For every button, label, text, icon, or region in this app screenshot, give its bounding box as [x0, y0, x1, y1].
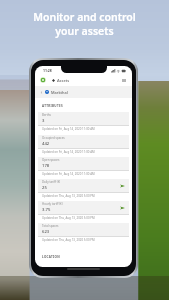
button[interactable]: Berths	[35, 112, 132, 135]
button[interactable]: Occupied spaces	[35, 135, 132, 158]
staticText: Total spaces	[42, 224, 59, 228]
staticText: Updated on Thu, Aug 13, 2020 5:00 PM	[42, 216, 95, 220]
button[interactable]: Home	[40, 77, 46, 83]
staticText: 11:28	[43, 68, 52, 73]
button[interactable]: Total spaces	[35, 223, 132, 246]
other: Back	[40, 91, 43, 94]
staticText: Monitor and control	[33, 10, 136, 24]
staticText: your assets	[55, 24, 114, 38]
staticText: Updated on Fri, Aug 14, 2020 11:00 AM	[42, 172, 95, 176]
staticText: 3.75	[42, 207, 51, 213]
staticText: Markthal	[51, 90, 68, 95]
staticText: Occupied spaces	[42, 136, 65, 140]
staticText: 25	[42, 185, 47, 191]
staticText: Daily tariff (€)	[42, 180, 61, 184]
button[interactable]: Open spaces	[35, 157, 132, 180]
staticText: Berths	[42, 113, 51, 117]
staticText: 442	[42, 141, 50, 147]
button[interactable]: Back	[35, 86, 132, 98]
staticText: Assets	[57, 78, 70, 83]
staticText: Updated on Fri, Aug 14, 2020 11:00 AM	[42, 127, 95, 131]
staticText: ATTRIBUTES	[42, 104, 63, 108]
button[interactable]: Daily tariff (€)	[35, 179, 132, 202]
staticText: Open spaces	[42, 158, 60, 162]
staticText: 623	[42, 229, 50, 235]
staticText: Updated on Thu, Aug 13, 2020 5:00 PM	[42, 238, 95, 242]
staticText: LOCATION	[42, 255, 60, 259]
staticText: Updated on Fri, Aug 14, 2020 11:00 AM	[42, 150, 95, 154]
staticText: Updated on Thu, Aug 13, 2020 5:00 PM	[42, 194, 95, 198]
staticText: Hourly tariff (€)	[42, 202, 63, 206]
button[interactable]: Menu	[121, 77, 127, 83]
button[interactable]: Hourly tariff (€)	[35, 201, 132, 224]
staticText: 178	[42, 163, 50, 169]
staticText: 3	[42, 118, 45, 124]
